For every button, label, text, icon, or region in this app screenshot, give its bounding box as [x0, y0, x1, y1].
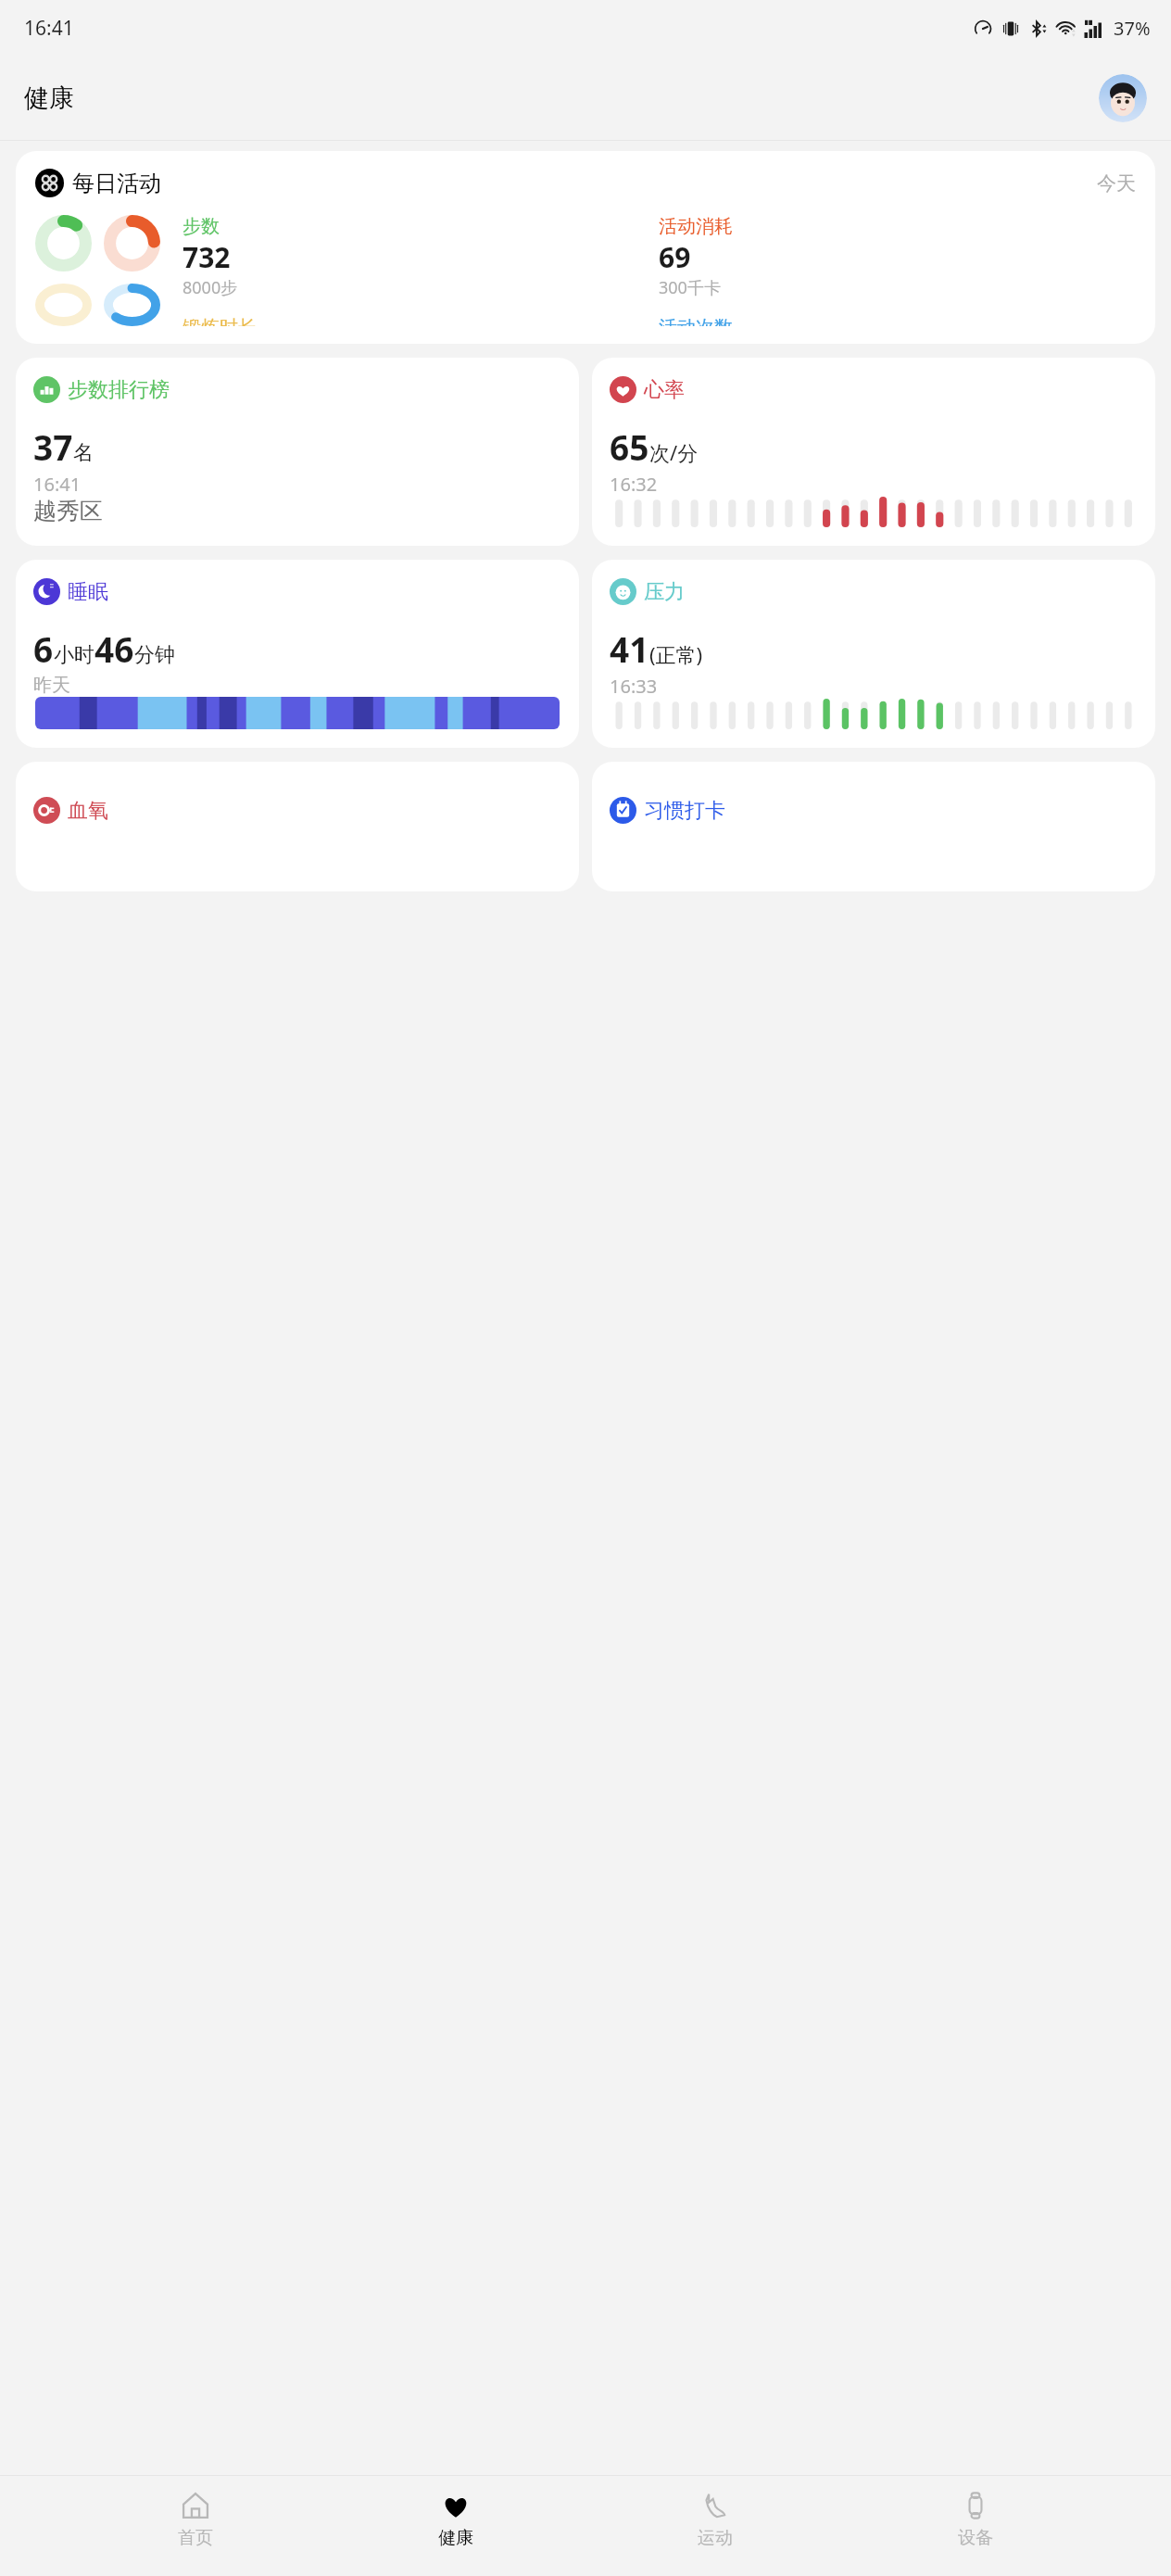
- staticText: 血氧: [68, 798, 108, 824]
- staticText: 步数排行榜: [68, 377, 170, 403]
- button[interactable]: 压力: [592, 560, 1155, 748]
- staticText: 37%: [1114, 16, 1151, 41]
- staticText: 732: [183, 238, 231, 276]
- button[interactable]: 首页: [131, 2476, 260, 2549]
- staticText: 37: [33, 423, 73, 470]
- staticText: 锻炼时长: [183, 316, 257, 326]
- staticText: 压力: [644, 579, 685, 605]
- staticText: 每日活动: [72, 170, 161, 197]
- button[interactable]: 步数排行榜: [16, 358, 579, 546]
- staticText: 睡眠: [68, 579, 108, 605]
- staticText: 健康: [24, 82, 74, 114]
- button[interactable]: 每日活动: [16, 151, 1155, 344]
- staticText: 300千卡: [659, 276, 721, 299]
- staticText: 运动: [698, 2527, 733, 2549]
- staticText: 步数: [183, 215, 220, 238]
- button[interactable]: 心率: [592, 358, 1155, 546]
- staticText: 46: [94, 625, 134, 672]
- staticText: (正常): [649, 640, 703, 668]
- staticText: 16:33: [610, 674, 658, 699]
- button[interactable]: 设备: [911, 2476, 1040, 2549]
- staticText: 8000步: [183, 276, 238, 299]
- staticText: 活动消耗: [659, 215, 733, 238]
- button[interactable]: 血氧: [16, 762, 579, 891]
- staticText: 65: [610, 423, 649, 470]
- staticText: 习惯打卡: [644, 798, 725, 824]
- button[interactable]: 运动: [650, 2476, 780, 2549]
- button[interactable]: 习惯打卡: [592, 762, 1155, 891]
- staticText: 设备: [958, 2527, 993, 2549]
- staticText: 6: [33, 625, 54, 672]
- staticText: 16:32: [610, 472, 658, 497]
- staticText: 16:41: [24, 15, 74, 42]
- staticText: 69: [659, 238, 691, 276]
- staticText: 昨天: [33, 674, 70, 697]
- staticText: 次/分: [649, 438, 699, 466]
- staticText: 名: [73, 440, 94, 466]
- staticText: 41: [610, 625, 649, 672]
- button[interactable]: 健康: [391, 2476, 521, 2549]
- button[interactable]: Profile: [1099, 74, 1147, 122]
- staticText: 今天: [1097, 171, 1136, 196]
- staticText: 越秀区: [33, 497, 103, 525]
- staticText: 首页: [178, 2527, 213, 2549]
- staticText: 16:41: [33, 472, 82, 497]
- staticText: 活动次数: [659, 316, 733, 326]
- staticText: 健康: [438, 2527, 473, 2549]
- staticText: 分钟: [134, 642, 175, 668]
- staticText: 心率: [644, 377, 685, 403]
- staticText: 小时: [54, 642, 94, 668]
- button[interactable]: 睡眠: [16, 560, 579, 748]
